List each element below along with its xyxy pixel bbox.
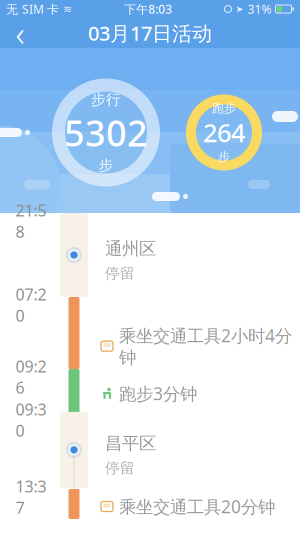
staticText: 21:58 [15, 200, 46, 242]
staticText: 03月17日活动 [88, 20, 212, 46]
staticText: 31% [247, 1, 271, 17]
staticText: 09:26 [15, 356, 46, 398]
staticText: 5302 [64, 109, 148, 156]
staticText: 下午8:03 [124, 1, 172, 17]
staticText: 07:20 [15, 284, 46, 326]
button[interactable]: 21:58 [0, 213, 300, 297]
staticText: 13:37 [15, 476, 46, 518]
staticText: 通州区 [105, 238, 156, 259]
staticText: 乘坐交通工具20分钟 [119, 495, 275, 518]
staticText: 09:30 [15, 399, 46, 441]
staticText: 跑步3分钟 [119, 382, 197, 405]
staticText: 跑步 [212, 101, 236, 116]
button[interactable]: 13:37 [0, 489, 300, 519]
staticText: 无 SIM 卡 [6, 1, 59, 17]
button[interactable]: 09:26 [0, 369, 300, 413]
staticText: 昌平区 [105, 433, 156, 454]
staticText: 停留 [105, 459, 135, 477]
staticText: 停留 [105, 264, 135, 282]
staticText: 乘坐交通工具2小时4分钟 [119, 324, 292, 368]
button[interactable]: 09:30 [0, 413, 300, 489]
staticText: 264 [203, 116, 245, 149]
button[interactable]: 07:20 [0, 297, 300, 369]
staticText: ‹ [15, 10, 24, 56]
staticText: 步 [98, 156, 113, 174]
staticText: ≋ [63, 3, 72, 15]
button[interactable]: 返回 [0, 18, 40, 48]
staticText: 步行 [91, 91, 121, 109]
staticText: 步 [218, 149, 230, 164]
staticText: ➤ [235, 4, 243, 14]
